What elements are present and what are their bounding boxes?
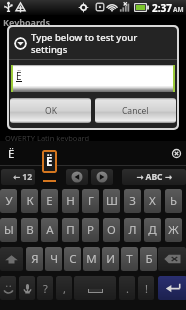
button[interactable]: Ч [45,247,62,271]
staticText: Е [46,193,53,209]
staticText: Ь [170,193,177,209]
button[interactable]: Р [82,218,99,242]
button[interactable]: Space [74,276,116,300]
staticText: Н [66,193,75,209]
staticText: QWERTY Latin keyboard [5,133,90,143]
staticText: Т [126,251,133,267]
staticText: О [107,222,116,238]
button[interactable]: Я [26,247,43,271]
button[interactable]: Е [41,189,58,213]
button[interactable]: З [124,189,141,213]
staticText: В [26,222,34,238]
button[interactable]: И [102,247,119,271]
staticText: Л [128,222,137,238]
staticText: Д [148,222,157,238]
button[interactable]: OK [10,98,91,123]
button[interactable]: В [21,218,38,242]
staticText: Х [149,193,156,209]
button[interactable]: Ж [165,218,182,242]
staticText: Ë [16,69,22,83]
button[interactable]: Т [121,247,138,271]
staticText: М [86,251,97,267]
button[interactable]: М [83,247,100,271]
staticText: Cancel [122,105,149,117]
button[interactable]: Voice input [19,276,35,300]
staticText: Ж [168,222,179,238]
button[interactable]: ← 12 [1,169,35,185]
button[interactable]: Cancel [95,98,176,123]
staticText: У [5,193,13,209]
staticText: AM [173,5,184,14]
button[interactable]: Н [62,189,79,213]
button[interactable]: Г [82,189,99,213]
staticText: OK [45,105,57,117]
staticText: Г [88,193,94,209]
button[interactable]: , [56,276,72,300]
staticText: Ë [8,146,15,162]
staticText: ! [145,281,148,296]
staticText: Keyboards [3,16,51,28]
staticText: Ш [106,193,118,209]
button[interactable]: Д [144,218,161,242]
staticText: Я [31,251,39,267]
button[interactable]: К [21,189,38,213]
staticText: Ë [46,154,53,170]
button[interactable]: Previous [66,169,88,185]
button[interactable]: Л [124,218,141,242]
staticText: Б [145,251,153,267]
staticText: И [106,251,115,267]
staticText: Ы [4,222,14,238]
button[interactable]: ? [37,276,53,300]
button[interactable]: Next [91,169,113,185]
button[interactable]: П [62,218,79,242]
button[interactable]: . [119,276,135,300]
staticText: ? [43,281,48,296]
button[interactable]: Ë [2,145,20,162]
staticText: Ч [50,251,58,267]
staticText: П [66,222,75,238]
staticText: С [69,251,77,267]
button[interactable]: Backspace [158,247,186,271]
button[interactable]: Б [140,247,157,271]
staticText: 2:37 [152,1,172,15]
staticText: Р [87,222,94,238]
button[interactable]: Close suggestions [172,149,181,158]
button[interactable]: Ш [103,189,120,213]
button[interactable]: Emoji [0,276,16,300]
button[interactable]: У [0,189,17,213]
button[interactable]: Ë [42,150,57,173]
staticText: . [126,281,129,296]
staticText: ← 12 [13,171,33,183]
button[interactable]: → ABC → [122,169,186,185]
staticText: А [46,222,54,238]
button[interactable]: Ь [165,189,182,213]
button[interactable]: А [41,218,58,242]
button[interactable]: Enter [158,276,186,300]
button[interactable]: ! [138,276,154,300]
button[interactable]: О [103,218,120,242]
button[interactable]: Ë [11,65,175,92]
button[interactable]: Х [144,189,161,213]
staticText: Type below to test your settings [31,31,155,56]
button[interactable]: Shift [0,247,23,271]
staticText: → ABC → [136,171,172,183]
staticText: К [26,193,34,209]
button[interactable]: Ы [0,218,17,242]
staticText: , [63,281,66,296]
staticText: З [129,193,136,209]
button[interactable]: С [64,247,81,271]
